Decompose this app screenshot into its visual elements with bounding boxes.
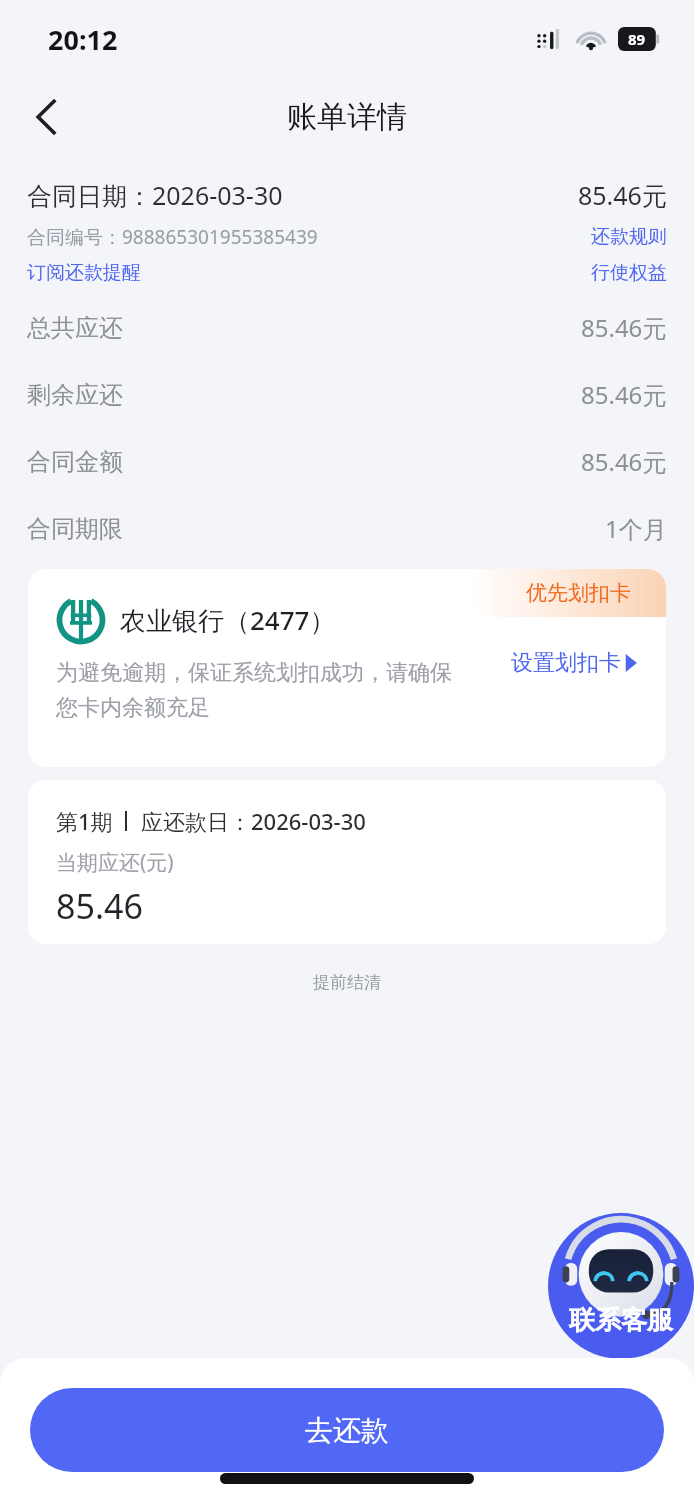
staticText: 应还款日：2026-03-30	[141, 806, 366, 836]
staticText: 85.46元	[581, 445, 667, 478]
button[interactable]: 还款规则	[591, 225, 667, 249]
button[interactable]: 订阅还款提醒	[27, 261, 141, 285]
staticText: 联系客服	[569, 1304, 673, 1337]
staticText: 订阅还款提醒	[27, 261, 141, 285]
staticText: 还款规则	[591, 225, 667, 249]
staticText: 85.46元	[581, 311, 667, 344]
staticText: 合同金额	[27, 447, 123, 477]
staticText: 85.46元	[581, 378, 667, 411]
staticText: 去还款	[305, 1413, 389, 1448]
staticText: 1个月	[605, 512, 667, 545]
button[interactable]: 去还款	[30, 1388, 664, 1472]
staticText: 合同编号：988865301955385439	[27, 224, 318, 250]
staticText: 第1期	[56, 806, 113, 836]
button[interactable]: 第1期	[28, 780, 666, 944]
staticText: 您卡内余额充足	[56, 694, 210, 722]
button[interactable]: 提前结清	[299, 966, 395, 999]
staticText: 提前结清	[313, 972, 381, 993]
button[interactable]: 返回	[20, 89, 76, 145]
button[interactable]: 设置划扣卡	[507, 645, 642, 681]
staticText: 账单详情	[287, 98, 407, 136]
staticText: 89	[628, 29, 646, 49]
staticText: 总共应还	[27, 313, 123, 343]
staticText: 行使权益	[591, 261, 667, 285]
staticText: 合同日期：2026-03-30	[27, 178, 283, 212]
staticText: 85.46	[56, 883, 143, 929]
button[interactable]: 行使权益	[591, 261, 667, 285]
staticText: 优先划扣卡	[526, 580, 631, 606]
staticText: 85.46元	[578, 178, 667, 212]
staticText: 20:12	[48, 21, 118, 58]
staticText: 农业银行（2477）	[120, 602, 336, 638]
button[interactable]: 联系客服	[548, 1213, 694, 1359]
staticText: 设置划扣卡	[511, 649, 621, 677]
button[interactable]: 优先划扣卡	[28, 569, 666, 767]
staticText: 当期应还(元)	[56, 848, 174, 877]
staticText: 剩余应还	[27, 380, 123, 410]
staticText: 为避免逾期，保证系统划扣成功，请确保	[56, 659, 452, 687]
staticText: 合同期限	[27, 514, 123, 544]
